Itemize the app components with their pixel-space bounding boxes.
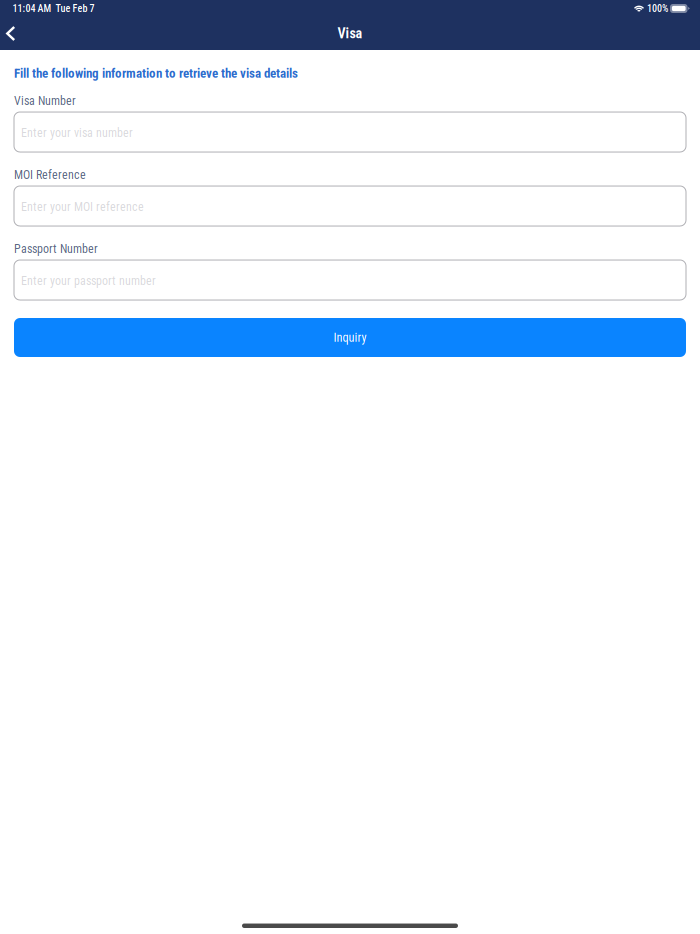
button[interactable]: Inquiry: [14, 318, 686, 357]
staticText: 11:04 AM: [13, 3, 52, 14]
staticText: Enter your MOI reference: [21, 200, 144, 214]
staticText: Inquiry: [333, 330, 366, 345]
staticText: Tue Feb 7: [56, 3, 95, 14]
staticText: Visa: [337, 25, 362, 42]
staticText: MOI Reference: [14, 168, 86, 182]
button[interactable]: Enter your visa number: [14, 112, 686, 152]
staticText: Fill the following information to retrie…: [14, 66, 298, 81]
button[interactable]: Enter your passport number: [14, 260, 686, 300]
staticText: Enter your passport number: [21, 274, 156, 288]
button[interactable]: Back: [0, 17, 25, 50]
staticText: Enter your visa number: [21, 126, 133, 140]
staticText: Visa Number: [14, 94, 76, 108]
button[interactable]: Enter your MOI reference: [14, 186, 686, 226]
staticText: 100%: [647, 3, 668, 14]
staticText: Passport Number: [14, 242, 98, 256]
